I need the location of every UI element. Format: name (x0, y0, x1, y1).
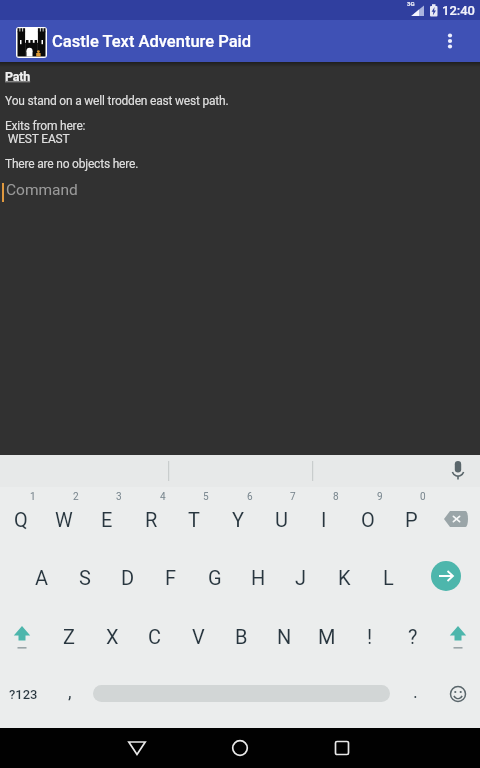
button[interactable]: A (21, 557, 63, 597)
staticText: 7 (290, 491, 296, 503)
button[interactable]: Q (0, 499, 42, 539)
button[interactable]: D (107, 557, 149, 597)
staticText: X (106, 625, 119, 648)
button[interactable] (434, 503, 478, 535)
staticText: 2 (73, 491, 79, 503)
staticText: A (35, 566, 49, 589)
button[interactable]: C (134, 616, 176, 656)
button[interactable] (431, 561, 461, 591)
button[interactable]: E (86, 499, 128, 539)
button[interactable]: K (323, 557, 365, 597)
staticText: ! (367, 625, 373, 648)
staticText: Y (232, 508, 245, 531)
staticText: C (148, 625, 162, 648)
button[interactable]: S (64, 557, 106, 597)
staticText: P (405, 508, 418, 531)
staticText: J (295, 566, 307, 589)
button[interactable]: ? (392, 616, 434, 656)
button[interactable] (2, 616, 42, 656)
staticText: M (318, 625, 336, 648)
button[interactable]: Y (217, 499, 259, 539)
staticText: S (79, 566, 91, 589)
button[interactable]: V (177, 616, 219, 656)
staticText: E (101, 508, 113, 531)
button[interactable]: P (390, 499, 432, 539)
staticText: Exits from here: (5, 119, 86, 133)
button[interactable]: U (260, 499, 302, 539)
button[interactable]: J (280, 557, 322, 597)
staticText: V (192, 625, 205, 648)
staticText: 5 (203, 491, 209, 503)
staticText: 12:40 (442, 3, 476, 18)
staticText: R (145, 508, 158, 531)
staticText: L (383, 566, 394, 589)
staticText: 4 (160, 491, 166, 503)
button[interactable]: B (220, 616, 262, 656)
staticText: 1 (30, 491, 36, 503)
button[interactable]: O (347, 499, 389, 539)
staticText: G (208, 566, 222, 589)
button[interactable] (16, 27, 47, 58)
button[interactable]: H (237, 557, 279, 597)
button[interactable] (438, 616, 478, 656)
staticText: Command (6, 181, 78, 199)
button[interactable]: ?123 (2, 674, 44, 714)
button[interactable] (216, 728, 264, 768)
button[interactable]: R (130, 499, 172, 539)
staticText: W (55, 508, 73, 531)
button[interactable]: , (49, 671, 91, 711)
button[interactable] (444, 680, 472, 708)
staticText: B (235, 625, 248, 648)
staticText: H (251, 566, 266, 589)
staticText: 6 (247, 491, 253, 503)
button[interactable]: I (303, 499, 345, 539)
button[interactable]: L (367, 557, 409, 597)
staticText: ? (408, 625, 418, 648)
staticText: ?123 (9, 687, 38, 702)
button[interactable]: T (173, 499, 215, 539)
button[interactable] (444, 457, 472, 485)
staticText: I (321, 508, 327, 531)
staticText: 3G (407, 0, 415, 7)
staticText: D (121, 566, 135, 589)
staticText: K (338, 566, 351, 589)
staticText: N (277, 625, 292, 648)
staticText: U (275, 508, 288, 531)
button[interactable]: Command (0, 178, 480, 208)
button[interactable]: Z (48, 616, 90, 656)
staticText: 0 (420, 491, 426, 503)
button[interactable]: G (194, 557, 236, 597)
button[interactable] (113, 728, 161, 768)
staticText: . (413, 681, 418, 702)
staticText: WEST EAST (5, 132, 70, 146)
staticText: , (68, 681, 72, 702)
button[interactable] (318, 728, 366, 768)
staticText: 9 (377, 491, 383, 503)
button[interactable]: X (91, 616, 133, 656)
staticText: Castle Text Adventure Paid (52, 32, 252, 51)
staticText: Q (14, 508, 28, 531)
staticText: T (188, 508, 200, 531)
staticText: O (361, 508, 375, 531)
button[interactable]: N (263, 616, 305, 656)
button[interactable]: . (394, 671, 436, 711)
button[interactable] (434, 25, 466, 57)
staticText: There are no objects here. (5, 157, 139, 171)
button[interactable]: F (150, 557, 192, 597)
staticText: 3 (116, 491, 122, 503)
staticText: 8 (333, 491, 339, 503)
staticText: Path (5, 69, 31, 84)
button[interactable]: W (43, 499, 85, 539)
staticText: F (165, 566, 177, 589)
staticText: You stand on a well trodden east west pa… (5, 94, 229, 108)
button[interactable]: M (306, 616, 348, 656)
button[interactable]: ! (349, 616, 391, 656)
staticText: Z (63, 625, 75, 648)
